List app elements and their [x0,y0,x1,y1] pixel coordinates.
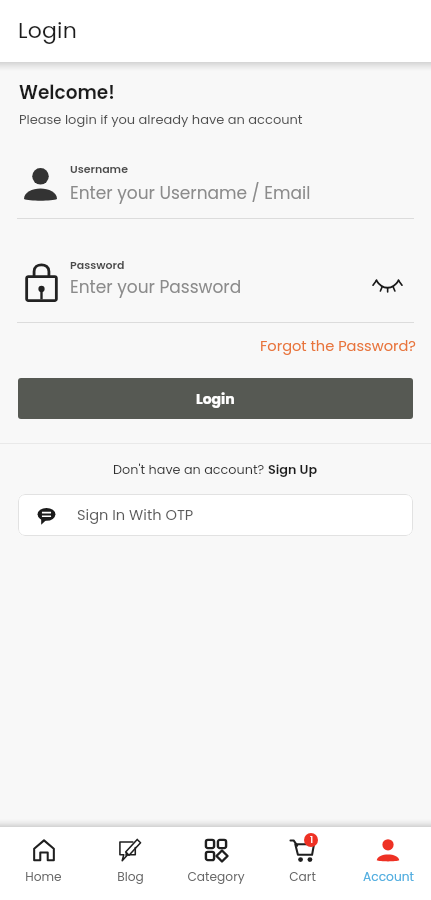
staticText: Login [196,389,235,409]
staticText: Cart [289,868,316,885]
staticText: Account [363,868,414,885]
staticText: Enter your Username / Email [70,181,311,205]
button[interactable]: Sign In With OTP [18,494,413,536]
button[interactable]: Forgot the Password? [260,336,416,356]
staticText: Welcome! [19,80,115,106]
staticText: Sign Up [268,461,318,479]
button[interactable]: Sign Up [268,461,318,479]
staticText: 1 [310,834,313,846]
button[interactable]: Login [18,378,413,419]
button[interactable]: Home [0,827,87,900]
button[interactable]: Category [173,827,259,900]
button[interactable]: Blog [87,827,173,900]
staticText: Login [18,15,77,46]
staticText: Please login if you already have an acco… [19,110,303,128]
staticText: Password [70,257,125,272]
button[interactable]: Password [0,255,431,315]
staticText: Home [25,868,62,885]
button[interactable]: Account [345,827,431,900]
staticText: Don't have an account? [113,461,268,479]
button[interactable]: 1 [259,827,345,900]
button[interactable]: Username [0,158,431,218]
staticText: Enter your Password [70,275,242,299]
button[interactable]: Show password [365,263,409,307]
staticText: Username [70,161,128,176]
staticText: Forgot the Password? [260,336,416,356]
staticText: Blog [117,868,144,885]
staticText: Sign In With OTP [77,505,194,525]
staticText: Category [187,868,245,885]
